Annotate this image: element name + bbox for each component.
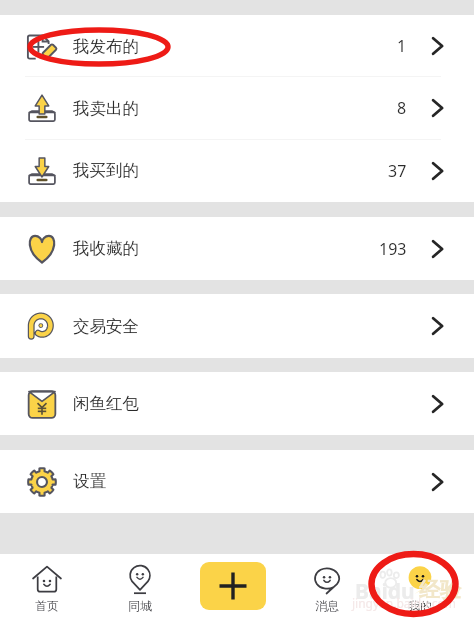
button[interactable]: 我发布的 [0, 15, 474, 77]
staticText: 同城 [128, 599, 152, 614]
staticText: 经验 [419, 577, 461, 603]
button[interactable]: 我的 [373, 554, 467, 622]
staticText: 193 [379, 238, 407, 260]
staticText: 我发布的 [73, 36, 139, 57]
staticText: Baidu [355, 577, 415, 606]
staticText: 首页 [35, 599, 59, 614]
button[interactable]: 闲鱼红包 [0, 372, 474, 435]
staticText: 交易安全 [73, 316, 139, 337]
button[interactable]: 首页 [0, 554, 94, 622]
button[interactable]: 我卖出的 [0, 77, 474, 139]
button[interactable]: Post new item [200, 562, 266, 610]
button[interactable]: 交易安全 [0, 294, 474, 358]
staticText: 37 [388, 160, 407, 182]
staticText: 消息 [315, 599, 339, 614]
staticText: 闲鱼红包 [73, 393, 139, 414]
staticText: 1 [397, 35, 407, 57]
staticText: 我的 [408, 599, 432, 614]
staticText: 设置 [73, 471, 106, 492]
button[interactable]: 同城 [93, 554, 187, 622]
button[interactable]: 我收藏的 [0, 217, 474, 280]
staticText: 我卖出的 [73, 98, 139, 119]
staticText: 我收藏的 [73, 238, 139, 259]
button[interactable]: 消息 [280, 554, 374, 622]
button[interactable]: 设置 [0, 450, 474, 513]
staticText: jingyan.baidu.com [352, 595, 456, 611]
button[interactable]: 我买到的 [0, 139, 474, 202]
staticText: 8 [397, 97, 407, 119]
staticText: 我买到的 [73, 160, 139, 181]
